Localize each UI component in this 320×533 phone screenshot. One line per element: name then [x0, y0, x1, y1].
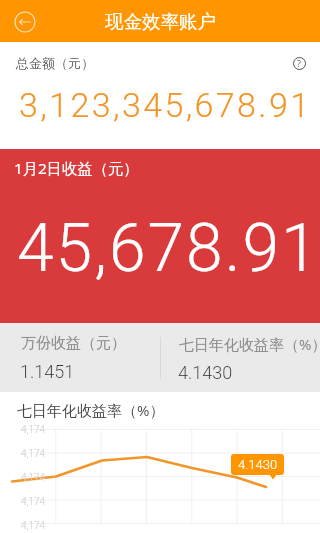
- staticText: 总金额（元）: [16, 55, 94, 71]
- button[interactable]: Help: [288, 52, 310, 74]
- staticText: 1.1451: [20, 361, 75, 382]
- staticText: 万份收益（元）: [21, 334, 126, 353]
- staticText: ?: [297, 57, 301, 69]
- staticText: 4,174: [21, 472, 46, 484]
- staticText: 4,174: [21, 448, 46, 460]
- staticText: 现金效率账户: [105, 10, 216, 33]
- staticText: 4.1430: [178, 362, 233, 383]
- staticText: 1月2日收益（元）: [14, 158, 139, 179]
- staticText: 4,174: [21, 424, 46, 436]
- staticText: 3,123,345,678.91: [19, 85, 312, 125]
- staticText: 4,174: [21, 496, 46, 508]
- staticText: 七日年化收益率（%）: [17, 400, 165, 420]
- staticText: 4.1430: [238, 457, 278, 472]
- button[interactable]: Back: [9, 6, 41, 38]
- staticText: 45,678.91: [17, 210, 320, 287]
- staticText: 4,174: [21, 520, 46, 532]
- staticText: 七日年化收益率（%）: [179, 334, 320, 354]
